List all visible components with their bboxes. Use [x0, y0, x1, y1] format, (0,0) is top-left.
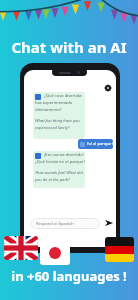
- staticText: Chat with an AI: [11, 37, 127, 57]
- button[interactable]: fui al parque hoy: [78, 139, 113, 149]
- staticText: Respond in Spanish: [36, 221, 74, 227]
- staticText: That sounds fun! What did you do in the …: [35, 170, 83, 183]
- staticText: in +60 languages !: [11, 267, 127, 285]
- button[interactable]: ¡Eso suena divertido!: [33, 151, 85, 188]
- staticText: fui al parque hoy: [87, 141, 113, 147]
- staticText: What fun thing have you experienced late…: [35, 118, 80, 131]
- staticText: ¡Eso suena divertido!: [44, 152, 84, 158]
- button[interactable]: Respond in Spanish: [31, 218, 100, 229]
- staticText: ¿Qué hiciste en el parque?: [35, 159, 85, 165]
- staticText: ¿Qué cosa divertida: [44, 93, 82, 99]
- button[interactable]: ¿Qué cosa divertida: [33, 92, 85, 139]
- button[interactable]: Settings: [102, 82, 114, 94]
- button[interactable]: Send: [102, 216, 115, 229]
- staticText: has experimentado últimamente?: [35, 100, 73, 113]
